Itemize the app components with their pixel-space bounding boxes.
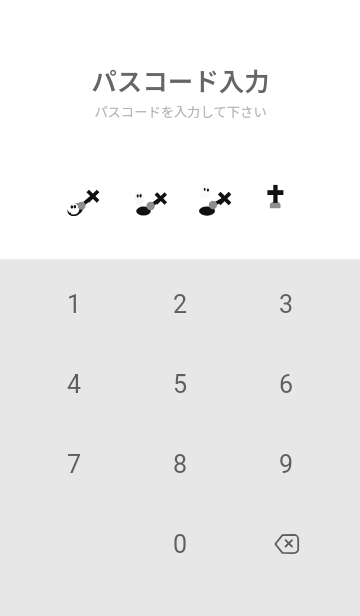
button[interactable]: 4: [21, 344, 127, 424]
button[interactable]: 3: [233, 264, 339, 344]
button[interactable]: Backspace: [233, 504, 339, 584]
staticText: 8: [173, 450, 188, 479]
staticText: 7: [67, 450, 82, 479]
staticText: 0: [173, 530, 188, 559]
staticText: 4: [67, 370, 82, 399]
staticText: 3: [279, 290, 294, 319]
staticText: 1: [67, 290, 82, 319]
staticText: パスコードを入力して下さい: [94, 102, 267, 121]
button[interactable]: 8: [127, 424, 233, 504]
staticText: 2: [173, 290, 188, 319]
staticText: 5: [173, 370, 188, 399]
button[interactable]: 2: [127, 264, 233, 344]
button[interactable]: 0: [127, 504, 233, 584]
button[interactable]: 9: [233, 424, 339, 504]
staticText: パスコード入力: [91, 61, 270, 98]
staticText: 6: [279, 370, 294, 399]
button[interactable]: 6: [233, 344, 339, 424]
button[interactable]: 5: [127, 344, 233, 424]
button[interactable]: 7: [21, 424, 127, 504]
button[interactable]: 1: [21, 264, 127, 344]
staticText: 9: [279, 450, 294, 479]
